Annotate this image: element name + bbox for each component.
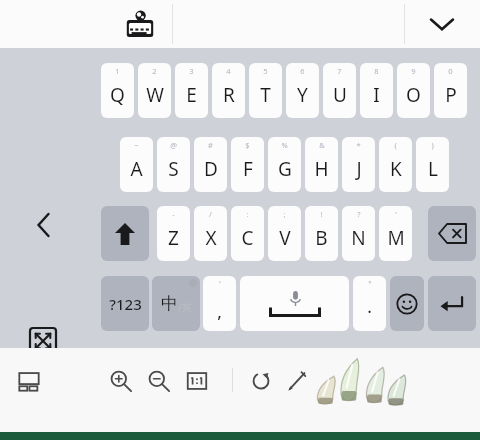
button[interactable]: 4 bbox=[212, 63, 245, 118]
button[interactable]: / bbox=[194, 206, 227, 261]
staticText: /英 bbox=[178, 300, 192, 314]
button[interactable] bbox=[101, 206, 149, 261]
button[interactable]: Brush styles bbox=[312, 356, 410, 412]
staticText: , bbox=[217, 300, 222, 323]
button[interactable]: 3 bbox=[175, 63, 208, 118]
staticText: ' bbox=[219, 279, 221, 290]
button[interactable] bbox=[390, 276, 424, 331]
button[interactable] bbox=[428, 276, 476, 331]
staticText: 5 bbox=[263, 66, 268, 76]
staticText: A bbox=[130, 156, 143, 182]
staticText: @ bbox=[170, 140, 177, 150]
button[interactable]: Collapse bbox=[424, 10, 460, 38]
staticText: ( bbox=[394, 140, 397, 150]
staticText: F bbox=[243, 156, 253, 182]
button[interactable]: ' bbox=[203, 276, 236, 331]
button[interactable]: ) bbox=[416, 137, 449, 192]
button[interactable]: % bbox=[268, 137, 301, 192]
button[interactable]: # bbox=[194, 137, 227, 192]
staticText: 0 bbox=[448, 66, 453, 76]
staticText: I bbox=[373, 82, 380, 108]
button[interactable]: ! bbox=[305, 206, 338, 261]
button[interactable]: Zoom out bbox=[144, 366, 174, 396]
staticText: C bbox=[241, 225, 254, 251]
button[interactable]: Refresh bbox=[246, 366, 276, 396]
staticText: Y bbox=[297, 82, 308, 108]
staticText: 4 bbox=[226, 66, 231, 76]
button[interactable]: Previous bbox=[26, 208, 60, 242]
staticText: Q bbox=[110, 82, 125, 108]
button[interactable]: @ bbox=[157, 137, 190, 192]
button[interactable]: Actual size bbox=[182, 366, 212, 396]
staticText: L bbox=[428, 156, 438, 182]
button[interactable]: ?123 bbox=[101, 276, 149, 331]
staticText: J bbox=[356, 156, 362, 182]
staticText: / bbox=[209, 209, 212, 219]
button[interactable]: 1 bbox=[101, 63, 134, 118]
staticText: 9 bbox=[411, 66, 416, 76]
button[interactable]: 9 bbox=[397, 63, 430, 118]
staticText: 6 bbox=[300, 66, 305, 76]
staticText: P bbox=[445, 82, 457, 108]
button[interactable]: 2 bbox=[138, 63, 171, 118]
staticText: 3 bbox=[189, 66, 194, 76]
staticText: M bbox=[387, 225, 405, 251]
staticText: ~ bbox=[134, 140, 139, 150]
button[interactable]: & bbox=[305, 137, 338, 192]
button[interactable]: ' bbox=[379, 206, 412, 261]
staticText: K bbox=[390, 156, 402, 182]
staticText: V bbox=[279, 225, 291, 251]
button[interactable]: Draw bbox=[282, 366, 312, 396]
button[interactable]: 8 bbox=[360, 63, 393, 118]
staticText: 1 bbox=[115, 66, 120, 76]
staticText: & bbox=[319, 140, 325, 150]
button[interactable]: Switch input language bbox=[118, 6, 162, 42]
button[interactable]: ; bbox=[268, 206, 301, 261]
staticText: % bbox=[281, 140, 288, 150]
button[interactable]: ~ bbox=[120, 137, 153, 192]
button[interactable]: - bbox=[157, 206, 190, 261]
staticText: N bbox=[351, 225, 366, 251]
button[interactable]: ? bbox=[342, 206, 375, 261]
staticText: " bbox=[368, 279, 372, 290]
button[interactable]: 5 bbox=[249, 63, 282, 118]
button[interactable]: Layout bbox=[14, 366, 44, 396]
button[interactable]: Zoom in bbox=[106, 366, 136, 396]
button[interactable]: 中 bbox=[152, 276, 200, 331]
staticText: T bbox=[260, 82, 271, 108]
staticText: E bbox=[186, 82, 197, 108]
staticText: 中 bbox=[161, 293, 178, 314]
staticText: * bbox=[356, 140, 361, 150]
button[interactable]: 7 bbox=[323, 63, 356, 118]
staticText: R bbox=[223, 82, 235, 108]
staticText: ; bbox=[283, 209, 286, 219]
button[interactable]: * bbox=[342, 137, 375, 192]
staticText: B bbox=[315, 225, 328, 251]
staticText: $ bbox=[245, 140, 250, 150]
button[interactable]: : bbox=[231, 206, 264, 261]
staticText: H bbox=[314, 156, 329, 182]
staticText: S bbox=[168, 156, 179, 182]
staticText: - bbox=[172, 209, 175, 219]
button[interactable]: 0 bbox=[434, 63, 467, 118]
button[interactable]: " bbox=[353, 276, 386, 331]
staticText: D bbox=[204, 156, 218, 182]
staticText: U bbox=[333, 82, 347, 108]
button[interactable]: 6 bbox=[286, 63, 319, 118]
staticText: W bbox=[146, 82, 164, 108]
staticText: ' bbox=[395, 209, 397, 219]
staticText: ) bbox=[431, 140, 434, 150]
button[interactable] bbox=[428, 206, 476, 261]
staticText: ?123 bbox=[109, 294, 142, 314]
staticText: # bbox=[208, 140, 213, 150]
button[interactable]: ( bbox=[379, 137, 412, 192]
staticText: O bbox=[406, 82, 421, 108]
button[interactable]: Resize keyboard bbox=[24, 322, 62, 360]
staticText: : bbox=[246, 209, 249, 219]
staticText: 2 bbox=[152, 66, 157, 76]
staticText: · bbox=[367, 300, 372, 323]
staticText: 8 bbox=[374, 66, 379, 76]
button[interactable]: Space bbox=[240, 276, 349, 331]
button[interactable]: $ bbox=[231, 137, 264, 192]
staticText: 7 bbox=[337, 66, 342, 76]
